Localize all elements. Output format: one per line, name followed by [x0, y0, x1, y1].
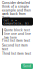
staticText: First list item text: [2, 39, 30, 42]
staticText: let x = compute(a, b) return x * 2 print…: [3, 19, 29, 31]
staticText: Consider detailed think of a simple exam…: [2, 1, 31, 19]
staticText: Second list item text: [2, 43, 28, 51]
staticText: Third list item text: [2, 52, 31, 56]
staticText: Quote block text line one and line two h…: [4, 28, 31, 39]
staticText: Send: [23, 64, 31, 68]
button[interactable]: Send: [21, 63, 33, 69]
